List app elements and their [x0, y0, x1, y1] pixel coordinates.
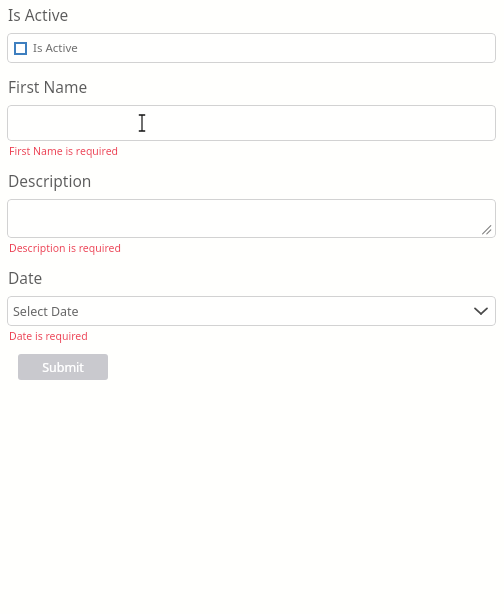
staticText: Date — [8, 267, 43, 288]
staticText: First Name is required — [9, 144, 119, 158]
button[interactable] — [7, 199, 496, 238]
staticText: Select Date — [13, 303, 79, 320]
staticText: Date is required — [9, 329, 88, 343]
button[interactable]: Is Active checkbox — [7, 33, 496, 63]
staticText: Submit — [42, 359, 84, 376]
staticText: Is Active — [33, 40, 78, 56]
button[interactable]: Select Date dropdown — [7, 296, 496, 326]
other: Is Active checkbox — [14, 42, 27, 55]
button[interactable]: Submit — [18, 354, 108, 380]
staticText: First Name — [8, 76, 88, 97]
staticText: Description — [8, 170, 92, 191]
staticText: Description is required — [9, 241, 121, 255]
staticText: Is Active — [8, 4, 69, 25]
button[interactable] — [7, 105, 496, 141]
